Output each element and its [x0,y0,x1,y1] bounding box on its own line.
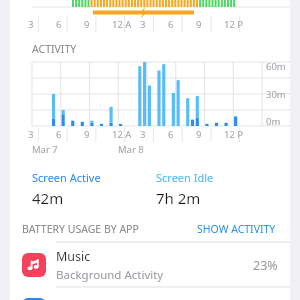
staticText: 9 [196,128,202,141]
button[interactable]: Music [10,243,290,287]
staticText: 7h 2m [156,188,201,208]
staticText: Screen Idle [156,170,214,185]
staticText: 6 [168,18,174,31]
button[interactable]: SHOW ACTIVITY [195,220,278,238]
staticText: Mar 7 [32,143,58,156]
staticText: ACTIVITY [32,42,77,56]
other: Music [22,253,46,277]
staticText: 9 [84,128,90,141]
staticText: 60m [266,60,286,73]
staticText: SHOW ACTIVITY [197,222,276,236]
staticText: 3 [140,128,146,141]
staticText: 9 [84,18,90,31]
staticText: 30m [266,88,286,101]
staticText: 6 [168,128,174,141]
staticText: Screen Active [32,170,101,185]
staticText: 12 A [112,18,132,31]
staticText: 12 P [224,18,244,31]
staticText: 6 [56,18,62,31]
staticText: 9 [196,18,202,31]
staticText: BATTERY USAGE BY APP [22,222,139,236]
staticText: 23% [253,257,278,274]
staticText: Mar 8 [118,143,144,156]
staticText: Background Activity [56,267,164,283]
staticText: 42m [32,188,64,208]
staticText: 3 [28,18,34,31]
staticText: 6 [56,128,62,141]
staticText: 3 [28,128,34,141]
staticText: 0m [266,115,281,128]
other: Home and Lock Screen [22,298,46,300]
staticText: Music [56,248,91,265]
staticText: 12 P [224,128,244,141]
staticText: 3 [140,18,146,31]
button[interactable]: Home and Lock Screen [10,288,290,300]
staticText: 12 A [112,128,132,141]
